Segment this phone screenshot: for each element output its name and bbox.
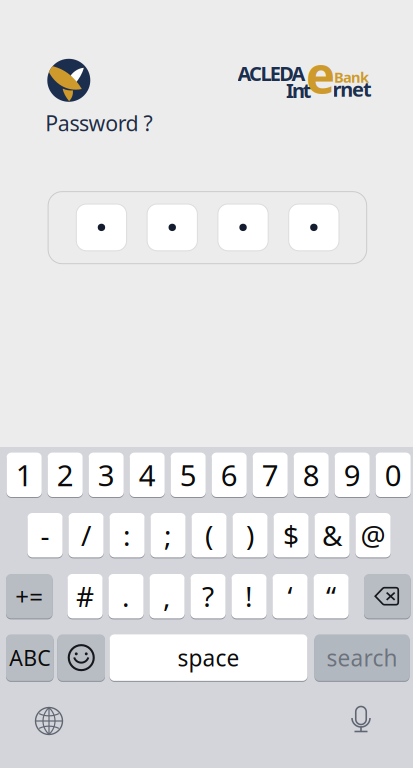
button[interactable]: # — [67, 574, 103, 618]
staticText: ‘ — [287, 578, 292, 615]
button[interactable]: 6 — [211, 453, 247, 497]
staticText: ABC — [9, 643, 50, 672]
button[interactable]: ( — [191, 513, 227, 557]
staticText: 9 — [344, 455, 361, 494]
button[interactable]: Password digit — [289, 204, 339, 251]
button[interactable]: 4 — [129, 453, 165, 497]
staticText: Password ? — [45, 109, 153, 137]
button[interactable]: += — [6, 574, 52, 618]
button[interactable]: space — [109, 634, 307, 681]
staticText: 5 — [180, 455, 197, 494]
button[interactable]: ; — [150, 513, 186, 557]
button[interactable]: “ — [313, 574, 349, 618]
staticText: space — [177, 643, 239, 673]
staticText: ; — [164, 517, 172, 554]
staticText: @ — [360, 517, 385, 554]
staticText: += — [15, 580, 43, 612]
button[interactable]: / — [68, 513, 104, 557]
button[interactable]: Dictation — [340, 700, 382, 742]
button[interactable]: ) — [232, 513, 268, 557]
button[interactable]: . — [108, 574, 144, 618]
button[interactable]: @ — [355, 513, 391, 557]
button[interactable]: Emoji — [57, 634, 105, 681]
staticText: . — [122, 578, 130, 615]
staticText: 8 — [303, 455, 320, 494]
button[interactable]: : — [109, 513, 145, 557]
button[interactable]: ABC — [6, 634, 53, 681]
staticText: 4 — [139, 455, 156, 494]
staticText: ( — [205, 517, 213, 554]
button[interactable]: Password digit — [147, 204, 197, 251]
button[interactable]: 7 — [252, 453, 288, 497]
staticText: ! — [245, 578, 253, 615]
staticText: “ — [326, 578, 336, 615]
staticText: ACLEDA — [238, 60, 306, 87]
button[interactable]: $ — [273, 513, 309, 557]
staticText: , — [163, 578, 171, 615]
staticText: search — [326, 643, 397, 673]
button[interactable]: ? — [190, 574, 226, 618]
button[interactable]: 2 — [47, 453, 83, 497]
staticText: 7 — [262, 455, 279, 494]
staticText: 1 — [16, 455, 33, 494]
button[interactable]: Password digit — [218, 204, 268, 251]
button[interactable]: ‘ — [272, 574, 308, 618]
button[interactable]: ! — [231, 574, 267, 618]
button[interactable]: Next keyboard — [28, 700, 70, 742]
button[interactable]: search — [314, 634, 409, 681]
staticText: - — [40, 517, 49, 554]
staticText: Int — [286, 77, 312, 104]
button[interactable]: Password digit — [76, 204, 127, 251]
staticText: ? — [202, 578, 214, 615]
button[interactable]: - — [27, 513, 63, 557]
button[interactable]: 3 — [88, 453, 124, 497]
button[interactable]: & — [314, 513, 350, 557]
staticText: Bank — [334, 67, 369, 87]
staticText: 6 — [221, 455, 238, 494]
staticText: : — [123, 517, 131, 554]
button[interactable]: 0 — [375, 453, 411, 497]
staticText: 0 — [385, 455, 402, 494]
button[interactable]: , — [149, 574, 185, 618]
staticText: e — [306, 42, 335, 107]
staticText: # — [76, 578, 94, 615]
staticText: $ — [283, 517, 299, 554]
button[interactable]: 1 — [6, 453, 42, 497]
button[interactable]: 9 — [334, 453, 370, 497]
staticText: & — [322, 517, 342, 554]
button[interactable]: Delete — [364, 574, 410, 618]
staticText: 2 — [57, 455, 74, 494]
button[interactable]: 5 — [170, 453, 206, 497]
staticText: ) — [246, 517, 254, 554]
staticText: 3 — [98, 455, 115, 494]
staticText: / — [81, 517, 91, 554]
staticText: rnet — [332, 76, 372, 102]
button[interactable]: 8 — [293, 453, 329, 497]
